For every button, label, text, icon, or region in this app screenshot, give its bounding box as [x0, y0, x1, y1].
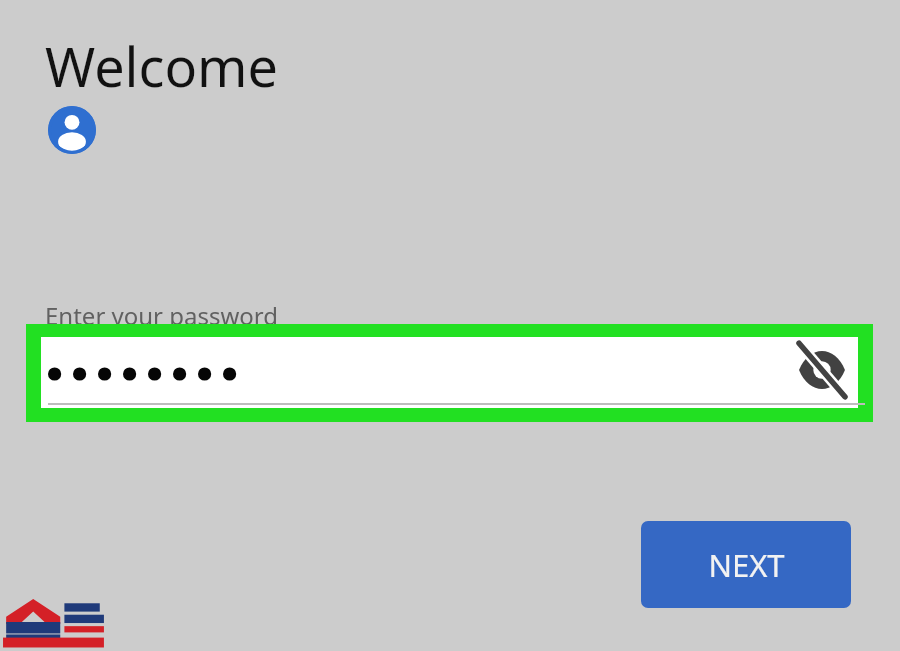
button[interactable]: NEXT [641, 521, 851, 608]
button[interactable]: Hide password [41, 337, 858, 408]
staticText: Enter your password [45, 299, 279, 332]
button[interactable]: Account [48, 106, 96, 154]
button[interactable]: Hide password [794, 342, 850, 398]
staticText: Welcome [45, 29, 279, 103]
staticText: NEXT [708, 544, 785, 586]
